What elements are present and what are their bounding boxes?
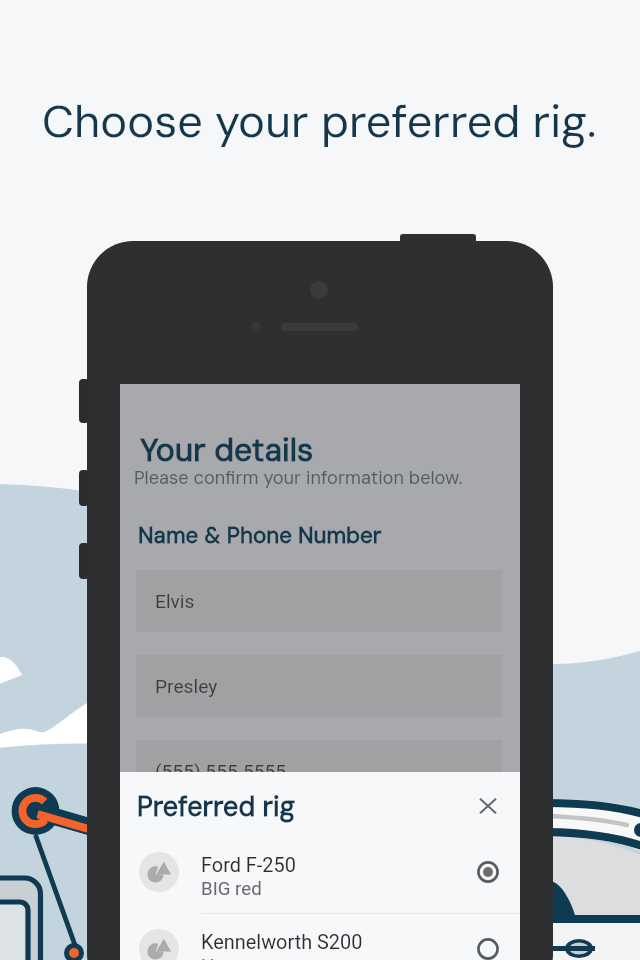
staticText: Elvis xyxy=(155,590,195,613)
staticText: (555) 555-5555 xyxy=(155,760,287,783)
staticText: Kennelworth S200 xyxy=(201,931,363,954)
button[interactable]: Ford F-250 xyxy=(120,842,520,917)
staticText: Hmm xyxy=(201,955,248,960)
staticText: Choose your preferred rig. xyxy=(42,92,597,151)
staticText: Name & Phone Number xyxy=(138,521,382,550)
button[interactable]: (555) 555-5555 xyxy=(136,740,502,802)
button[interactable]: Preferred rig xyxy=(137,789,295,824)
button[interactable]: Elvis xyxy=(136,570,502,632)
staticText: Ford F-250 xyxy=(201,854,296,877)
staticText: BIG red xyxy=(201,878,262,900)
staticText: Presley xyxy=(155,675,218,698)
button[interactable]: Kennelworth S200 xyxy=(120,919,520,960)
staticText: Preferred rig xyxy=(137,789,295,824)
button[interactable]: Close xyxy=(466,784,510,828)
staticText: Please confirm your information below. xyxy=(134,466,463,490)
button[interactable]: Presley xyxy=(136,655,502,717)
staticText: Your details xyxy=(140,429,314,471)
